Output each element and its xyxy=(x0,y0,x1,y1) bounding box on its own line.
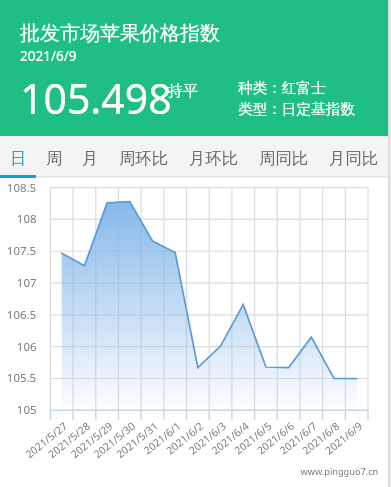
staticText: 类型：日定基指数 xyxy=(238,100,355,118)
button[interactable]: 月 xyxy=(72,136,108,178)
staticText: 2021/6/9 xyxy=(20,47,77,65)
staticText: 周 xyxy=(46,148,63,168)
staticText: 种类：红富士 xyxy=(238,79,326,97)
staticText: 周同比 xyxy=(259,148,308,168)
button[interactable]: 日 xyxy=(0,136,36,178)
button[interactable]: 周环比 xyxy=(108,136,178,178)
staticText: 月 xyxy=(82,148,99,168)
button[interactable]: 周 xyxy=(36,136,72,178)
staticText: 周环比 xyxy=(119,148,168,168)
staticText: 持平 xyxy=(168,82,198,101)
staticText: 月同比 xyxy=(329,148,378,168)
staticText: 日 xyxy=(10,148,27,168)
button[interactable]: 周同比 xyxy=(248,136,318,178)
button[interactable]: 月环比 xyxy=(178,136,248,178)
staticText: 105.498 xyxy=(20,70,172,126)
button[interactable]: 月同比 xyxy=(318,136,388,178)
staticText: 批发市场苹果价格指数 xyxy=(20,21,220,46)
staticText: 月环比 xyxy=(189,148,238,168)
